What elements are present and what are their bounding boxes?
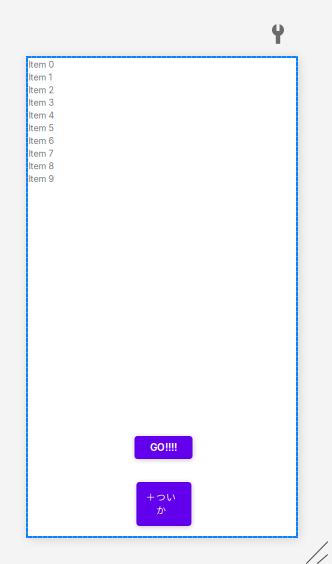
staticText: Item 2 — [29, 85, 54, 95]
button[interactable]: Settings — [266, 22, 290, 46]
staticText: Item 3 — [29, 97, 54, 108]
staticText: Item 8 — [29, 161, 54, 171]
staticText: Item 5 — [29, 123, 54, 133]
button[interactable]: ＋つい — [136, 482, 191, 526]
staticText: GO!!!! — [150, 441, 177, 453]
staticText: Item 0 — [29, 59, 55, 70]
staticText: Item 7 — [29, 148, 54, 159]
staticText: Item 9 — [29, 173, 54, 184]
button[interactable]: GO!!!! — [134, 436, 192, 459]
staticText: か — [156, 503, 166, 517]
staticText: Item 1 — [29, 72, 53, 82]
staticText: Item 4 — [29, 110, 55, 121]
staticText: Item 6 — [29, 135, 54, 146]
staticText: ＋つい — [146, 489, 176, 503]
